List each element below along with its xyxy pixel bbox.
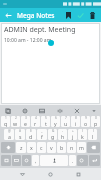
button[interactable]: Back	[3, 10, 14, 21]
button[interactable]: -	[58, 129, 67, 140]
button[interactable]: 3	[21, 116, 30, 127]
staticText: l	[92, 133, 94, 140]
button[interactable]: c	[37, 142, 46, 153]
button[interactable]: z	[16, 142, 26, 153]
staticText: Mega Notes	[17, 11, 55, 20]
button[interactable]: 9	[81, 116, 90, 127]
staticText: 6	[55, 116, 57, 120]
staticText: +	[72, 129, 74, 133]
button[interactable]: 7	[61, 116, 70, 127]
button[interactable]: v	[47, 142, 56, 153]
button[interactable]: x	[27, 142, 36, 153]
staticText: q	[4, 120, 8, 127]
staticText: v	[50, 144, 53, 151]
staticText: m	[79, 144, 84, 151]
staticText: -	[62, 129, 64, 133]
staticText: o	[84, 120, 88, 127]
staticText: y	[54, 120, 57, 127]
staticText: &	[52, 129, 55, 133]
staticText: p	[94, 120, 98, 127]
button[interactable]: Shift	[1, 142, 15, 153]
staticText: #	[19, 129, 22, 133]
staticText: 10:00 am - 12:00 am	[4, 37, 52, 44]
staticText: x	[30, 144, 33, 151]
staticText: j	[72, 133, 74, 140]
staticText: @	[8, 129, 11, 133]
button[interactable]: Back	[17, 169, 28, 180]
staticText: w	[13, 120, 18, 127]
staticText: 8	[75, 116, 77, 120]
staticText: u	[64, 120, 68, 127]
button[interactable]: Bookmark	[62, 9, 74, 21]
staticText: 2	[15, 116, 17, 120]
staticText: i	[75, 120, 77, 127]
button[interactable]: .	[69, 155, 76, 166]
staticText: $	[30, 129, 32, 133]
staticText: z	[20, 144, 23, 151]
button[interactable]: 0	[91, 116, 100, 127]
button[interactable]: 6	[51, 116, 60, 127]
button[interactable]: Clipboard	[3, 106, 12, 115]
button[interactable]: Emoji	[1, 155, 11, 166]
staticText: 7	[65, 116, 67, 120]
button[interactable]: Done	[74, 9, 86, 21]
staticText: b	[60, 144, 64, 151]
button[interactable]: #	[15, 129, 25, 140]
button[interactable]: (	[78, 129, 87, 140]
button[interactable]: m	[77, 142, 86, 153]
button[interactable]: Enter	[89, 155, 100, 166]
button[interactable]: Backspace	[87, 142, 100, 153]
staticText: 0	[95, 116, 97, 120]
button[interactable]: ,	[32, 155, 39, 166]
button[interactable]: 5	[41, 116, 50, 127]
staticText: 9	[85, 116, 87, 120]
staticText: _	[41, 129, 43, 133]
button[interactable]: Resize	[55, 106, 64, 115]
staticText: )	[93, 129, 94, 133]
staticText: a	[8, 133, 11, 140]
button[interactable]: _	[37, 129, 47, 140]
button[interactable]: )	[88, 129, 97, 140]
button[interactable]: Theme	[37, 106, 46, 115]
button[interactable]: Sticker	[72, 106, 81, 115]
staticText: r	[34, 120, 37, 127]
button[interactable]: Home	[45, 169, 56, 180]
button[interactable]: 8	[71, 116, 80, 127]
button[interactable]: +	[68, 129, 77, 140]
button[interactable]: Recents	[73, 169, 84, 180]
button[interactable]: Delete	[86, 9, 98, 21]
staticText: ADMIN dept. Meeting	[4, 25, 76, 35]
staticText: 4	[35, 116, 37, 120]
button[interactable]: 4	[31, 116, 40, 127]
button[interactable]: More	[89, 106, 98, 115]
button[interactable]: Language	[22, 155, 31, 166]
button[interactable]: 2	[11, 116, 20, 127]
staticText: ,	[35, 157, 37, 164]
button[interactable]: &	[48, 129, 57, 140]
staticText: c	[40, 144, 43, 151]
button[interactable]: n	[67, 142, 76, 153]
staticText: 1	[5, 116, 7, 120]
staticText: h	[61, 133, 65, 140]
button[interactable]: b	[57, 142, 66, 153]
staticText: .	[72, 157, 74, 164]
staticText: n	[70, 144, 74, 151]
staticText: k	[81, 133, 84, 140]
button[interactable]: Settings	[20, 106, 29, 115]
button[interactable]: 1	[1, 116, 10, 127]
staticText: f	[41, 133, 43, 140]
staticText: d	[29, 133, 33, 140]
staticText: (	[82, 129, 83, 133]
button[interactable]: Space	[40, 155, 68, 166]
button[interactable]: Emoticon	[77, 155, 88, 166]
button[interactable]: $	[26, 129, 36, 140]
button[interactable]: Symbols	[12, 155, 21, 166]
button[interactable]: ADMIN dept. Meeting	[1, 23, 100, 104]
staticText: 3	[25, 116, 27, 120]
staticText: t	[45, 120, 47, 127]
button[interactable]: @	[4, 129, 14, 140]
staticText: s	[19, 133, 22, 140]
staticText: 5	[45, 116, 47, 120]
staticText: e	[24, 120, 27, 127]
staticText: g	[51, 133, 55, 140]
